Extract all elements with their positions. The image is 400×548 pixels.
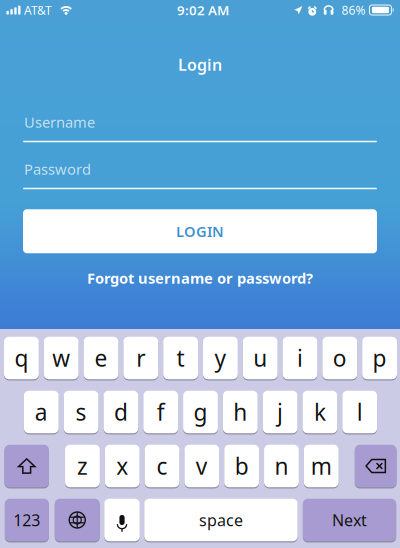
button[interactable]: Next keyboard: [55, 498, 100, 542]
staticText: LOGIN: [176, 221, 224, 241]
staticText: Username: [24, 112, 95, 132]
button[interactable]: q: [4, 336, 39, 380]
button[interactable]: Dictation: [104, 498, 140, 542]
staticText: e: [94, 343, 107, 373]
button[interactable]: y: [203, 336, 238, 380]
button[interactable]: e: [84, 336, 118, 380]
staticText: j: [277, 397, 283, 427]
button[interactable]: m: [304, 444, 339, 488]
button[interactable]: a: [24, 390, 59, 434]
staticText: v: [196, 451, 208, 481]
staticText: z: [77, 451, 88, 481]
button[interactable]: LOGIN: [0, 209, 400, 253]
staticText: a: [35, 397, 48, 427]
button[interactable]: s: [64, 390, 98, 434]
button[interactable]: j: [263, 390, 297, 434]
staticText: f: [157, 397, 165, 427]
button[interactable]: v: [184, 444, 219, 488]
button[interactable]: 123: [5, 498, 49, 542]
button[interactable]: c: [145, 444, 179, 488]
button[interactable]: b: [224, 444, 259, 488]
staticText: Password: [24, 159, 91, 179]
button[interactable]: h: [223, 390, 258, 434]
staticText: q: [14, 343, 28, 373]
button[interactable]: z: [65, 444, 100, 488]
staticText: b: [235, 451, 249, 481]
staticText: d: [114, 397, 128, 427]
staticText: l: [357, 397, 363, 427]
button[interactable]: Shift: [4, 444, 49, 488]
button[interactable]: t: [163, 336, 198, 380]
staticText: 9:02 AM: [177, 1, 229, 19]
staticText: o: [333, 343, 347, 373]
button[interactable]: o: [322, 336, 357, 380]
button[interactable]: w: [44, 336, 79, 380]
staticText: c: [157, 451, 168, 481]
staticText: s: [76, 397, 87, 427]
button[interactable]: i: [283, 336, 317, 380]
staticText: Login: [178, 54, 222, 75]
staticText: g: [193, 397, 207, 427]
staticText: m: [311, 451, 332, 481]
button[interactable]: Forgot username or password?: [67, 261, 333, 295]
staticText: y: [214, 343, 226, 373]
button[interactable]: x: [105, 444, 140, 488]
staticText: space: [199, 509, 243, 531]
staticText: w: [52, 343, 70, 373]
button[interactable]: u: [243, 336, 278, 380]
button[interactable]: Delete: [355, 444, 396, 488]
staticText: 86%: [341, 2, 365, 18]
button[interactable]: r: [123, 336, 158, 380]
staticText: p: [373, 343, 387, 373]
staticText: t: [177, 343, 185, 373]
button[interactable]: g: [183, 390, 218, 434]
staticText: r: [136, 343, 145, 373]
staticText: x: [116, 451, 128, 481]
button[interactable]: f: [143, 390, 178, 434]
staticText: k: [314, 397, 326, 427]
staticText: n: [274, 451, 288, 481]
staticText: Next: [332, 509, 367, 531]
button[interactable]: space: [144, 498, 298, 542]
staticText: 123: [13, 509, 40, 531]
staticText: i: [297, 343, 303, 373]
button[interactable]: Next: [303, 498, 396, 542]
button[interactable]: p: [362, 336, 397, 380]
button[interactable]: k: [302, 390, 337, 434]
button[interactable]: d: [103, 390, 138, 434]
staticText: AT&T: [24, 2, 52, 18]
button[interactable]: l: [342, 390, 377, 434]
button[interactable]: n: [264, 444, 299, 488]
staticText: u: [253, 343, 267, 373]
staticText: h: [233, 397, 247, 427]
staticText: Forgot username or password?: [87, 268, 313, 288]
